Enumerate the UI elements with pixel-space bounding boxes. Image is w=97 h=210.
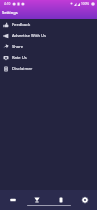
button[interactable]: Awards bbox=[25, 190, 49, 209]
staticText: 4:10 bbox=[4, 2, 11, 6]
button[interactable]: Advertise With Us bbox=[0, 30, 97, 41]
button[interactable]: Home bbox=[0, 190, 25, 209]
button[interactable]: News bbox=[49, 190, 73, 209]
button[interactable]: Share bbox=[0, 41, 97, 52]
button[interactable]: Feedback bbox=[0, 19, 97, 30]
button[interactable]: Settings bbox=[73, 190, 97, 209]
button[interactable]: Rate Us bbox=[0, 52, 97, 63]
staticText: Advertise With Us bbox=[12, 33, 46, 39]
button[interactable]: Disclaimer bbox=[0, 63, 97, 74]
staticText: Rate Us bbox=[12, 55, 27, 61]
staticText: Disclaimer bbox=[12, 66, 33, 72]
staticText: Feedback bbox=[12, 22, 31, 28]
staticText: Settings bbox=[2, 10, 18, 15]
staticText: Share bbox=[12, 44, 23, 50]
staticText: 100% bbox=[81, 2, 90, 6]
